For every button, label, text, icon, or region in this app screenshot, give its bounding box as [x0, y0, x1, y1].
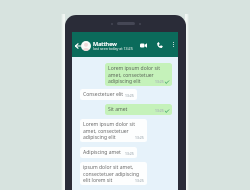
staticText: 13:25	[135, 135, 144, 140]
staticText: Lorem ipsum dolor sit amet, consectetuer…	[108, 65, 166, 84]
staticText: 13:25	[155, 79, 164, 84]
button[interactable]: More options	[169, 40, 178, 49]
staticText: 13:25	[125, 93, 134, 98]
button[interactable]: Lorem ipsum dolor sit amet, consectetuer…	[80, 119, 147, 142]
button[interactable]: Back	[73, 41, 82, 50]
button[interactable]: Video call	[138, 40, 148, 50]
staticText: Adipiscing amet	[83, 149, 134, 156]
staticText: 13:25	[155, 108, 164, 113]
staticText: Lorem ipsum dolor sit amet, consectetuer…	[83, 121, 141, 140]
staticText: Sit amet	[108, 106, 148, 113]
button[interactable]: Lorem ipsum dolor sit amet, consectetuer…	[105, 63, 172, 86]
button[interactable]: Adipiscing amet	[80, 147, 137, 158]
button[interactable]: ipsum dolor sit amet, consectetuer adipi…	[80, 162, 147, 185]
staticText: 13:25	[135, 178, 144, 183]
staticText: ipsum dolor sit amet, consectetuer adipi…	[83, 164, 141, 183]
staticText: Consectetuer elit	[83, 91, 134, 98]
staticText: last seen today at 13:25	[93, 46, 133, 51]
button[interactable]: Sit amet	[105, 104, 172, 115]
button[interactable]: Call	[155, 40, 165, 50]
staticText: 13:25	[125, 151, 134, 156]
staticText: Matthew	[93, 40, 117, 48]
button[interactable]: Consectetuer elit	[80, 89, 137, 100]
